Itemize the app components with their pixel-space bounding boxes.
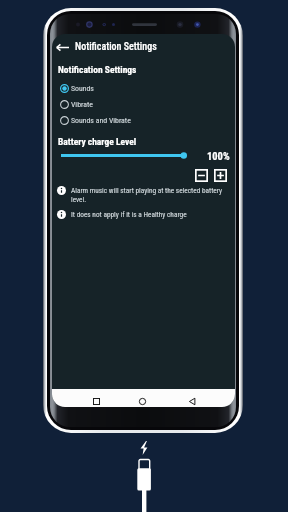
button[interactable]: Decrease — [195, 169, 208, 182]
staticText: Notification Settings — [75, 41, 157, 53]
staticText: It does not apply if it is a Healthy cha… — [71, 210, 187, 219]
staticText: Sounds and Vibrate — [71, 116, 131, 125]
staticText: Vibrate — [71, 100, 93, 109]
button[interactable]: Home — [130, 389, 154, 407]
button[interactable]: Increase — [214, 169, 227, 182]
button[interactable]: Back — [52, 34, 73, 60]
button[interactable] — [61, 147, 187, 164]
button[interactable]: Sounds and Vibrate — [52, 112, 235, 128]
button[interactable]: Sounds — [52, 80, 235, 96]
staticText: Notification Settings — [58, 64, 137, 75]
staticText: Sounds — [71, 84, 94, 93]
button[interactable]: Vibrate — [52, 96, 235, 112]
button[interactable]: Recents — [84, 389, 108, 407]
staticText: 100% — [207, 150, 230, 162]
button[interactable]: Back — [180, 389, 204, 407]
staticText: Battery charge Level — [58, 136, 137, 147]
staticText: Alarm music will start playing at the se… — [71, 186, 223, 204]
